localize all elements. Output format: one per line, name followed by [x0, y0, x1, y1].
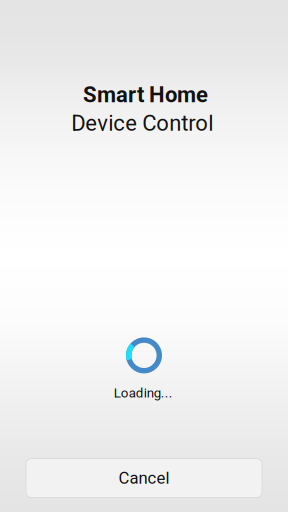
- button[interactable]: Cancel: [26, 458, 262, 497]
- staticText: Device Control: [71, 110, 213, 136]
- staticText: Loading...: [114, 385, 173, 401]
- staticText: Smart Home: [83, 82, 208, 108]
- staticText: Cancel: [118, 468, 169, 488]
